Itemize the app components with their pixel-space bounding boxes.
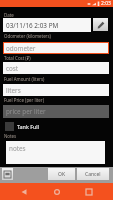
staticText: cost — [6, 64, 19, 73]
staticText: price per liter — [6, 107, 46, 116]
button[interactable]: Pick date — [93, 18, 108, 31]
staticText: Total Cost (₽) — [4, 55, 31, 61]
button[interactable]: liters — [3, 84, 109, 96]
button[interactable]: 03/11/16 2:03 PM — [3, 18, 91, 32]
button[interactable]: Cancel — [77, 168, 109, 180]
button[interactable]: price per liter — [3, 105, 109, 118]
button[interactable]: notes — [6, 141, 105, 164]
staticText: OK — [58, 171, 66, 178]
staticText: odometer — [6, 44, 36, 53]
staticText: Cancel — [85, 171, 101, 178]
button[interactable]: Home — [48, 183, 66, 200]
staticText: Date — [4, 12, 14, 18]
staticText: liters — [6, 86, 21, 95]
staticText: Notes — [4, 133, 17, 139]
staticText: Fuel Amount (liters) — [4, 76, 45, 82]
staticText: 03/11/16 2:03 PM — [6, 21, 59, 30]
button[interactable]: cost — [3, 62, 109, 74]
staticText: Odometer (kilometers) — [4, 33, 51, 39]
staticText: 2:03 — [101, 0, 111, 7]
staticText: Fuel Price (per liter) — [4, 97, 44, 103]
button[interactable]: odometer — [3, 42, 109, 54]
button[interactable]: OK — [48, 168, 75, 180]
staticText: Tank Full — [17, 123, 40, 130]
button[interactable]: Back — [15, 183, 33, 200]
button[interactable]: Recents — [80, 183, 98, 200]
staticText: notes — [9, 144, 26, 153]
button[interactable]: Keyboard — [2, 168, 13, 180]
button[interactable]: Tank Full — [5, 122, 40, 131]
